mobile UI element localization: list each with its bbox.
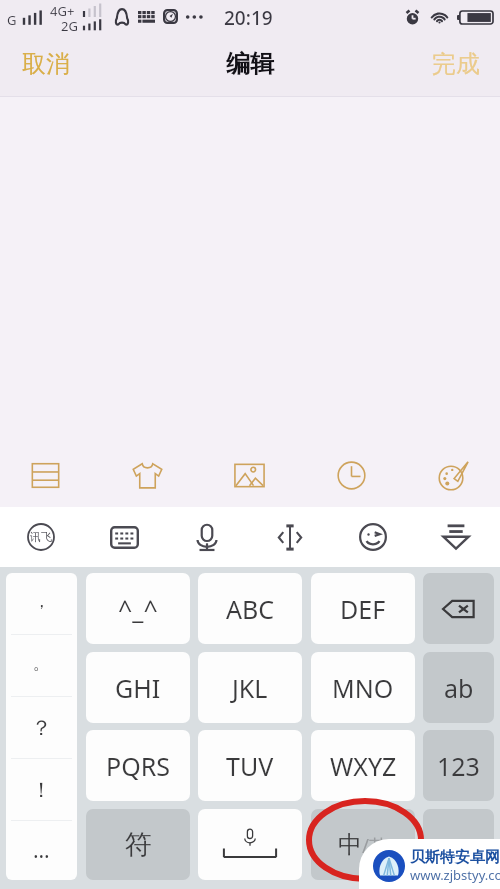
button[interactable]: TUV	[198, 730, 302, 801]
button[interactable]: Voice input	[184, 514, 230, 560]
staticText: TUV	[226, 749, 274, 783]
button[interactable]: Hide keyboard	[433, 514, 479, 560]
button[interactable]: 取消	[8, 39, 84, 89]
staticText: 2G	[61, 17, 78, 35]
staticText: ！	[31, 777, 52, 803]
staticText: DEF	[340, 592, 386, 626]
staticText: MNO	[332, 671, 394, 705]
button[interactable]: Layout	[19, 449, 71, 501]
button[interactable]: WXYZ	[311, 730, 415, 801]
staticText: ？	[31, 715, 52, 741]
staticText: 取消	[22, 49, 70, 79]
button[interactable]: Emoji	[350, 514, 396, 560]
button[interactable]: Theme	[427, 449, 479, 501]
staticText: /英	[362, 833, 389, 859]
button[interactable]: JKL	[198, 652, 302, 723]
staticText: ABC	[226, 592, 275, 626]
staticText: WXYZ	[330, 749, 397, 783]
staticText: 4G+	[50, 2, 75, 20]
button[interactable]: ！	[6, 759, 77, 820]
staticText: 贝斯特安卓网	[410, 848, 500, 867]
button[interactable]: ^_^	[86, 573, 190, 644]
button[interactable]: ABC	[198, 573, 302, 644]
button[interactable]: ab	[423, 652, 494, 723]
button[interactable]: Keyboard	[101, 514, 147, 560]
staticText: www.zjbstyy.com	[410, 866, 500, 884]
button[interactable]: Backspace	[423, 573, 494, 644]
staticText: ^_^	[118, 592, 158, 626]
button[interactable]: 完成	[418, 39, 494, 89]
staticText: ab	[444, 671, 474, 705]
staticText: JKL	[232, 671, 268, 705]
button[interactable]: Recent	[325, 449, 377, 501]
button[interactable]: PQRS	[86, 730, 190, 801]
staticText: 中	[338, 830, 362, 860]
staticText: …	[33, 836, 50, 865]
staticText: 编辑	[226, 49, 274, 79]
button[interactable]: DEF	[311, 573, 415, 644]
staticText: 123	[437, 749, 480, 783]
staticText: 。	[33, 653, 50, 674]
staticText: ，	[33, 591, 50, 612]
button[interactable]: 符	[86, 809, 190, 880]
staticText: 20:19	[224, 5, 273, 31]
staticText: PQRS	[106, 749, 170, 783]
button[interactable]: 。	[6, 635, 77, 696]
button[interactable]: 中	[311, 809, 415, 880]
button[interactable]: GHI	[86, 652, 190, 723]
button[interactable]: Move cursor	[267, 514, 313, 560]
button[interactable]: Wallpaper	[223, 449, 275, 501]
staticText: 讯飞	[30, 530, 52, 544]
button[interactable]: …	[6, 821, 77, 880]
staticText: GHI	[115, 671, 161, 705]
button[interactable]: Space	[198, 809, 302, 880]
button[interactable]: ？	[6, 697, 77, 758]
staticText: G	[7, 11, 17, 29]
staticText: 完成	[432, 49, 480, 79]
staticText: 符	[125, 828, 152, 862]
button[interactable]: Skin	[121, 449, 173, 501]
button[interactable]: IFlytek	[18, 514, 64, 560]
button[interactable]: MNO	[311, 652, 415, 723]
button[interactable]: ，	[6, 573, 77, 634]
button[interactable]: 123	[423, 730, 494, 801]
button[interactable]: Enter	[423, 809, 494, 880]
